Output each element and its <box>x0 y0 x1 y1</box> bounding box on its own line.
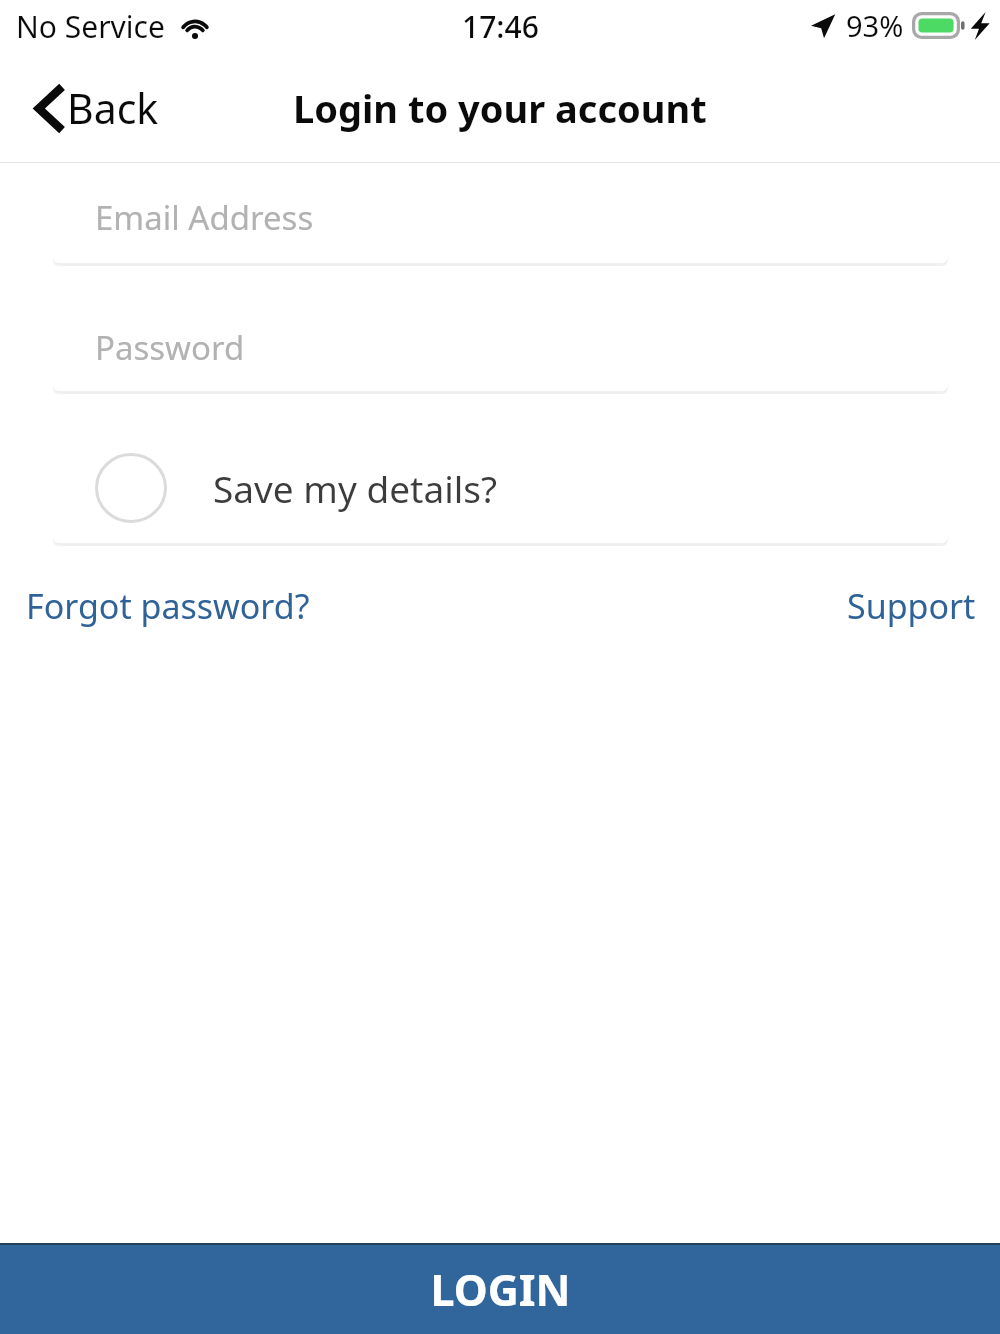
staticText: Email Address <box>95 195 314 240</box>
staticText: No Service <box>16 6 165 47</box>
staticText: 93% <box>846 6 904 45</box>
other: Back <box>36 86 64 131</box>
button[interactable]: Support <box>847 577 976 635</box>
button[interactable]: Save my details? <box>53 433 948 543</box>
staticText: Save my details? <box>213 463 498 513</box>
staticText: LOGIN <box>430 1260 571 1319</box>
button[interactable]: Back <box>26 68 169 148</box>
staticText: Back <box>67 80 159 136</box>
staticText: Login to your account <box>293 82 707 134</box>
button[interactable]: Forgot password? <box>26 577 310 635</box>
button[interactable]: LOGIN <box>0 1245 1000 1334</box>
button[interactable]: Password <box>53 303 948 391</box>
staticText: Support <box>847 583 976 629</box>
staticText: 17:46 <box>462 6 539 47</box>
staticText: Password <box>95 325 245 370</box>
button[interactable]: Email Address <box>53 172 948 263</box>
staticText: Forgot password? <box>26 583 310 629</box>
